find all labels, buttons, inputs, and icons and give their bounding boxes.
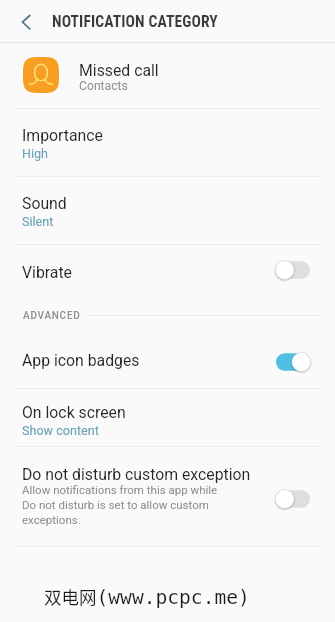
button[interactable]: Importance: [0, 108, 335, 176]
button[interactable]: Vibrate: [0, 244, 335, 312]
staticText: Silent: [22, 214, 54, 229]
button[interactable]: Switch on: [274, 352, 312, 372]
button[interactable]: Sound: [0, 176, 335, 244]
staticText: Sound: [22, 194, 67, 213]
button[interactable]: On lock screen: [0, 388, 335, 446]
button[interactable]: Switch off: [274, 260, 312, 280]
staticText: Missed call: [79, 61, 159, 80]
button[interactable]: Missed call: [0, 43, 335, 108]
staticText: App icon badges: [22, 351, 140, 370]
staticText: High: [22, 146, 49, 161]
button[interactable]: Do not disturb custom exception: [0, 446, 335, 546]
staticText: Vibrate: [22, 263, 72, 282]
staticText: Allow notifications from this app while …: [22, 483, 218, 527]
staticText: 双电网(www.pcpc.me): [44, 584, 250, 609]
staticText: On lock screen: [22, 403, 126, 422]
staticText: Importance: [22, 126, 103, 145]
button[interactable]: Navigate up: [9, 4, 45, 40]
staticText: NOTIFICATION CATEGORY: [52, 13, 218, 31]
staticText: Do not disturb custom exception: [22, 465, 251, 484]
staticText: Show content: [22, 423, 99, 438]
button[interactable]: App icon badges: [0, 330, 335, 388]
staticText: Contacts: [79, 79, 128, 93]
staticText: ADVANCED: [23, 310, 81, 322]
button[interactable]: Switch off: [274, 489, 312, 509]
